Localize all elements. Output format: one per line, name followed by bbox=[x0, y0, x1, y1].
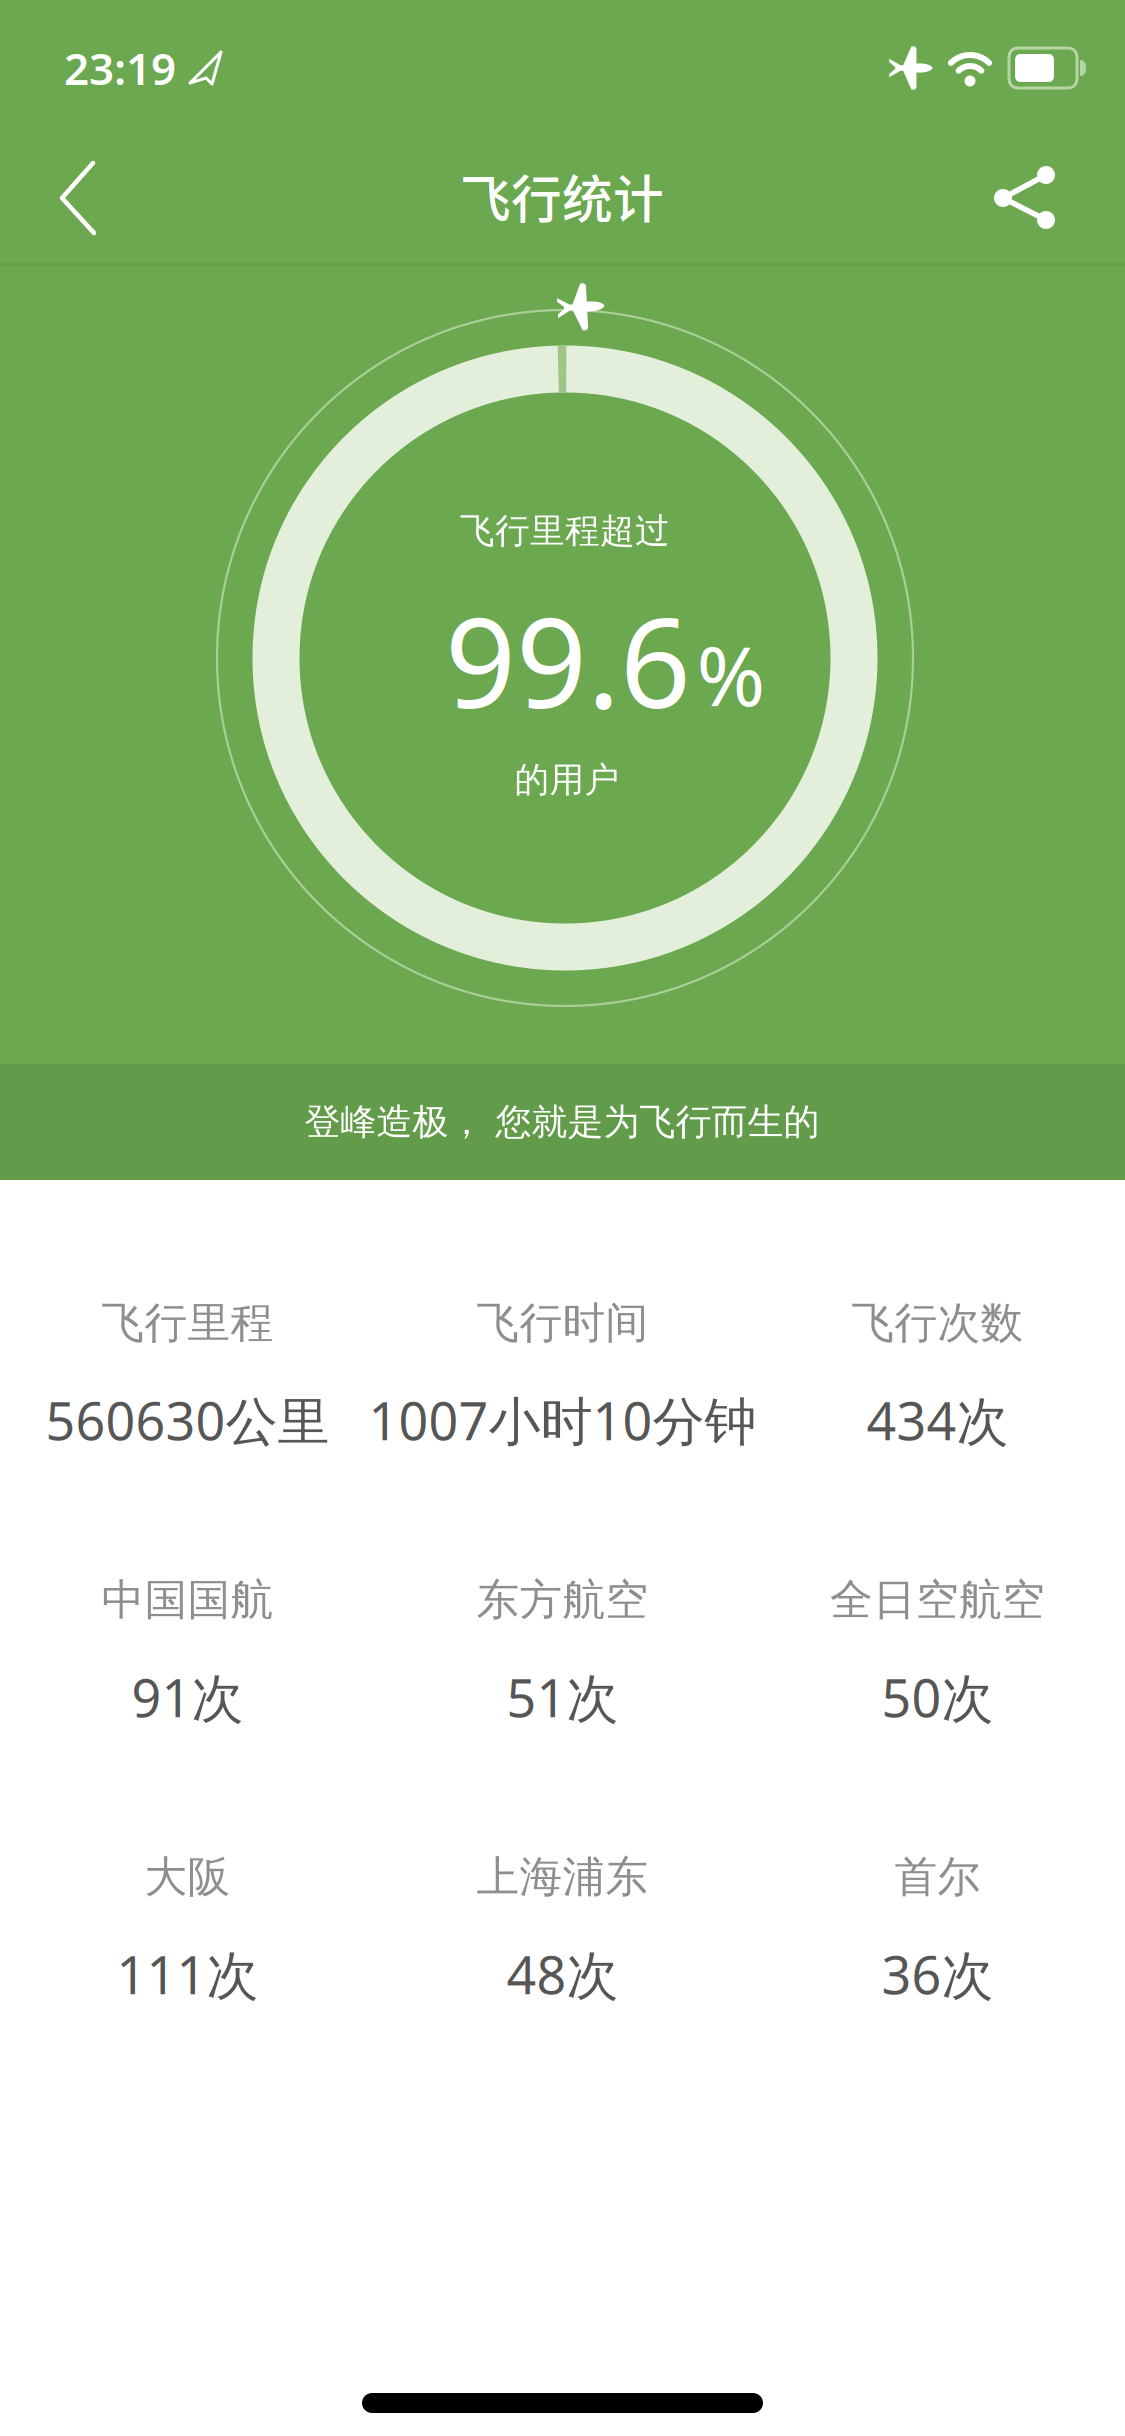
staticText: 50次 bbox=[881, 1662, 993, 1732]
staticText: 上海浦东 bbox=[476, 1851, 648, 1903]
button[interactable]: 返回 bbox=[0, 130, 130, 264]
staticText: 飞行里程超过 bbox=[460, 510, 670, 552]
staticText: 51次 bbox=[506, 1662, 618, 1732]
staticText: 99.6 bbox=[445, 578, 691, 742]
staticText: 首尔 bbox=[894, 1851, 980, 1903]
staticText: 48次 bbox=[506, 1939, 618, 2009]
staticText: 飞行时间 bbox=[476, 1297, 648, 1349]
staticText: 飞行里程 bbox=[101, 1297, 273, 1349]
staticText: 飞行统计 bbox=[460, 159, 664, 233]
staticText: 飞行次数 bbox=[851, 1297, 1023, 1349]
staticText: 1007小时10分钟 bbox=[368, 1385, 756, 1455]
staticText: 大阪 bbox=[144, 1851, 230, 1903]
staticText: 111次 bbox=[116, 1939, 258, 2009]
staticText: 东方航空 bbox=[476, 1574, 648, 1626]
staticText: 登峰造极， 您就是为飞行而生的 bbox=[304, 1100, 819, 1144]
staticText: 36次 bbox=[881, 1939, 993, 2009]
staticText: 23:19 bbox=[64, 39, 176, 97]
staticText: 全日空航空 bbox=[830, 1574, 1045, 1626]
staticText: 的用户 bbox=[514, 759, 619, 801]
staticText: 中国国航 bbox=[101, 1574, 273, 1626]
button[interactable]: 分享 bbox=[935, 130, 1115, 264]
staticText: % bbox=[696, 619, 765, 729]
staticText: 434次 bbox=[866, 1385, 1008, 1455]
staticText: 560630公里 bbox=[45, 1385, 329, 1455]
staticText: 91次 bbox=[131, 1662, 243, 1732]
